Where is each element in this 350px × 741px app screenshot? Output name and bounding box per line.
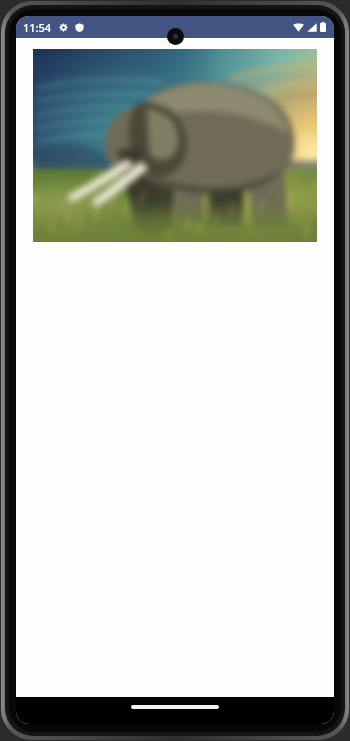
staticText: 11:54 — [23, 20, 52, 35]
button[interactable]: Elephant photo — [33, 49, 317, 242]
